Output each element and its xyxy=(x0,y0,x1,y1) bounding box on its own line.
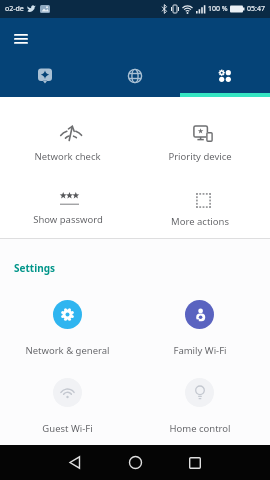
button[interactable]: Home control xyxy=(132,359,267,437)
button[interactable] xyxy=(180,445,210,480)
button[interactable] xyxy=(0,56,90,96)
staticText: Guest Wi-Fi xyxy=(42,422,93,435)
staticText: More actions xyxy=(171,215,229,228)
button[interactable] xyxy=(120,445,150,480)
staticText: Home control xyxy=(169,422,231,435)
button[interactable]: Network & general xyxy=(0,281,135,359)
staticText: Network & general xyxy=(25,344,110,357)
staticText: 100 % xyxy=(208,4,228,14)
staticText: Family Wi-Fi xyxy=(173,344,227,357)
staticText: o2-de xyxy=(5,4,24,14)
button[interactable] xyxy=(180,56,270,96)
staticText: Priority device xyxy=(168,150,232,163)
button[interactable] xyxy=(90,56,180,96)
staticText: Settings xyxy=(14,261,55,275)
button[interactable] xyxy=(60,445,90,480)
button[interactable]: Priority device xyxy=(132,97,267,170)
button[interactable]: Guest Wi-Fi xyxy=(0,359,135,437)
staticText: Network check xyxy=(34,150,101,163)
button[interactable]: Network check xyxy=(0,97,135,170)
staticText: 05:47 xyxy=(247,4,265,14)
button[interactable]: Family Wi-Fi xyxy=(132,281,267,359)
button[interactable] xyxy=(8,27,34,51)
button[interactable]: Show password xyxy=(0,170,135,238)
staticText: Show password xyxy=(33,213,103,226)
button[interactable]: More actions xyxy=(132,170,267,238)
